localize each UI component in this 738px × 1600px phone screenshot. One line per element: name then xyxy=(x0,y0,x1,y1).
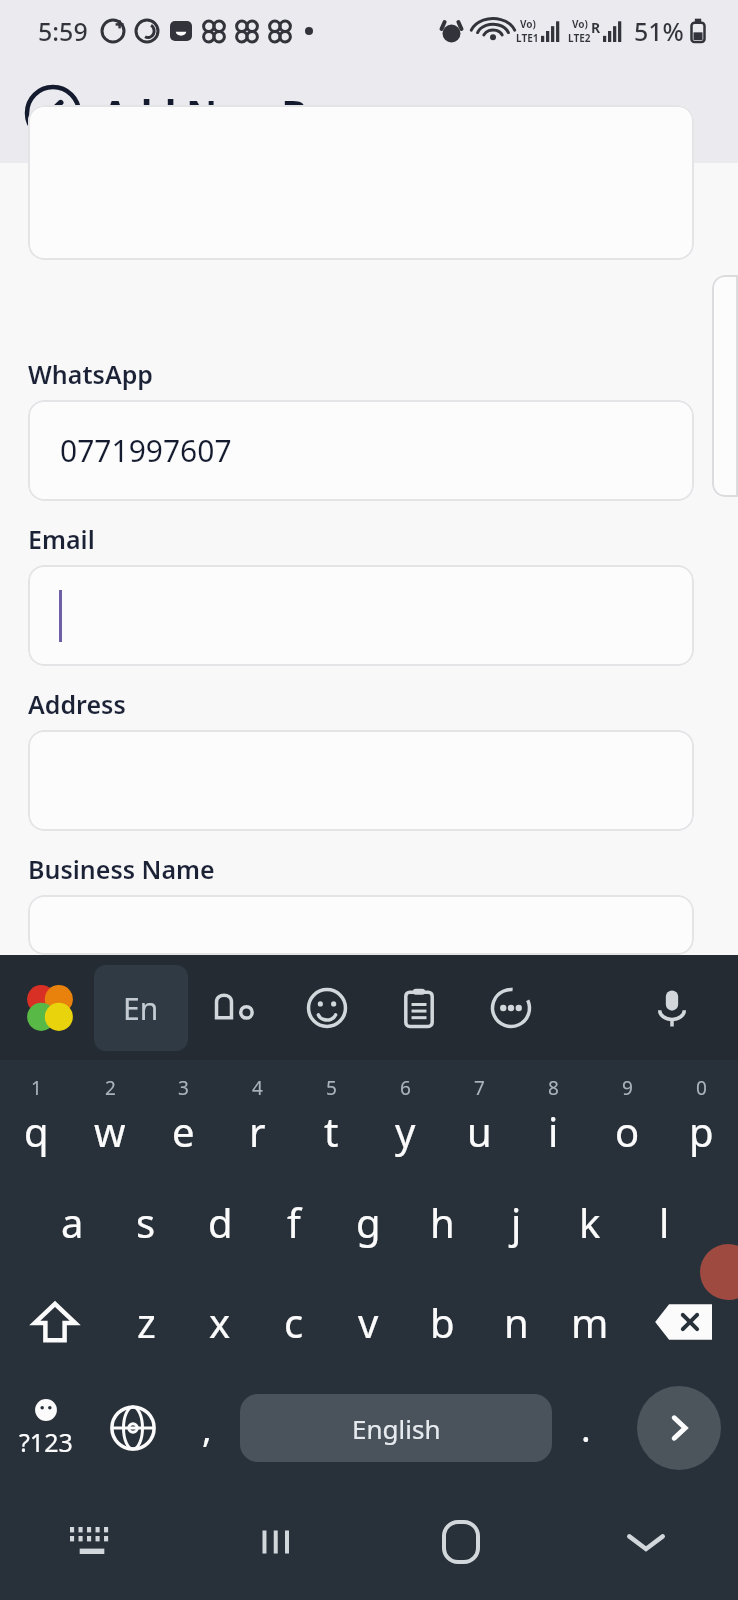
staticText: Business Name xyxy=(28,852,215,886)
staticText: m xyxy=(571,1295,609,1349)
staticText: Vo) xyxy=(520,17,536,31)
staticText: r xyxy=(249,1104,266,1158)
button[interactable]: 4 xyxy=(220,1060,294,1172)
button[interactable]: Stickers xyxy=(188,965,281,1051)
button[interactable]: Home xyxy=(368,1484,553,1600)
button[interactable]: a xyxy=(36,1172,109,1272)
staticText: WhatsApp xyxy=(28,357,153,391)
button[interactable] xyxy=(28,105,694,260)
staticText: c xyxy=(284,1295,304,1349)
staticText: Email xyxy=(28,522,95,556)
button[interactable]: Back xyxy=(22,82,84,144)
button[interactable]: Change language xyxy=(92,1372,173,1484)
button[interactable]: c xyxy=(257,1272,331,1372)
button[interactable]: s xyxy=(109,1172,183,1272)
staticText: 6 xyxy=(400,1075,411,1101)
staticText: 0 xyxy=(696,1075,707,1101)
staticText: l xyxy=(659,1195,670,1249)
staticText: d xyxy=(208,1195,233,1249)
staticText: p xyxy=(689,1104,714,1158)
staticText: q xyxy=(24,1104,49,1158)
button[interactable]: b xyxy=(405,1272,479,1372)
button[interactable]: 6 xyxy=(368,1060,442,1172)
staticText: s xyxy=(136,1195,156,1249)
staticText: 3 xyxy=(178,1075,189,1101)
staticText: LTE1 xyxy=(516,31,539,45)
button[interactable]: Voice input xyxy=(640,965,704,1051)
button[interactable]: Backspace xyxy=(627,1272,738,1372)
button[interactable]: . xyxy=(552,1372,619,1484)
staticText: u xyxy=(467,1104,492,1158)
button[interactable]: English xyxy=(240,1394,552,1462)
staticText: y xyxy=(395,1104,416,1158)
button[interactable]: 5 xyxy=(294,1060,368,1172)
button[interactable]: 2 xyxy=(73,1060,146,1172)
button[interactable]: Emoji xyxy=(281,965,373,1051)
button[interactable]: Show keyboard layout xyxy=(0,1484,184,1600)
staticText: o xyxy=(615,1104,640,1158)
button[interactable]: h xyxy=(405,1172,479,1272)
staticText: 5:59 xyxy=(38,14,88,48)
staticText: w xyxy=(94,1104,126,1158)
button[interactable]: 0 xyxy=(664,1060,738,1172)
button[interactable]: k xyxy=(553,1172,627,1272)
button[interactable]: g xyxy=(331,1172,405,1272)
button[interactable]: , xyxy=(173,1372,240,1484)
staticText: 51% xyxy=(634,14,684,48)
button[interactable]: x xyxy=(183,1272,257,1372)
staticText: R xyxy=(591,18,601,37)
button[interactable] xyxy=(28,895,694,955)
button[interactable]: v xyxy=(331,1272,405,1372)
button[interactable]: More options xyxy=(465,965,557,1051)
staticText: h xyxy=(430,1195,455,1249)
staticText: , xyxy=(202,1404,212,1453)
staticText: k xyxy=(579,1195,601,1249)
staticText: f xyxy=(287,1195,301,1249)
staticText: e xyxy=(172,1104,195,1158)
button[interactable] xyxy=(28,565,694,666)
button[interactable]: j xyxy=(479,1172,553,1272)
staticText: 5 xyxy=(326,1075,337,1101)
button[interactable]: z xyxy=(110,1272,183,1372)
button[interactable]: f xyxy=(257,1172,331,1272)
staticText: j xyxy=(511,1195,522,1249)
button[interactable]: 7 xyxy=(442,1060,516,1172)
staticText: 0771997607 xyxy=(60,430,232,471)
button[interactable]: Enter xyxy=(619,1372,738,1484)
button[interactable]: d xyxy=(183,1172,257,1272)
staticText: 2 xyxy=(105,1075,116,1101)
staticText: g xyxy=(356,1195,381,1249)
staticText: x xyxy=(209,1295,231,1349)
button[interactable]: Shift xyxy=(0,1272,110,1372)
button[interactable]: Hide keyboard xyxy=(553,1484,738,1600)
button[interactable]: Keyboard settings xyxy=(18,976,82,1040)
button[interactable]: 9 xyxy=(590,1060,664,1172)
button[interactable]: m xyxy=(553,1272,627,1372)
button[interactable]: n xyxy=(479,1272,553,1372)
staticText: 7 xyxy=(474,1075,485,1101)
button[interactable]: Recent apps xyxy=(184,1484,368,1600)
button[interactable]: 1 xyxy=(0,1060,73,1172)
button[interactable]: En xyxy=(94,965,188,1051)
staticText: 8 xyxy=(548,1075,559,1101)
staticText: LTE2 xyxy=(568,31,591,45)
staticText: 9 xyxy=(622,1075,633,1101)
button[interactable]: 8 xyxy=(516,1060,590,1172)
staticText: ?123 xyxy=(19,1425,73,1459)
staticText: i xyxy=(548,1104,559,1158)
staticText: Add New Borrower xyxy=(102,87,459,139)
button[interactable]: l xyxy=(627,1172,701,1272)
staticText: b xyxy=(430,1295,455,1349)
staticText: v xyxy=(358,1295,379,1349)
staticText: t xyxy=(324,1104,339,1158)
staticText: z xyxy=(137,1295,156,1349)
button[interactable]: 3 xyxy=(146,1060,220,1172)
staticText: Address xyxy=(28,687,126,721)
button[interactable] xyxy=(28,730,694,831)
staticText: 4 xyxy=(252,1075,263,1101)
button[interactable]: Clipboard xyxy=(373,965,465,1051)
button[interactable]: 0771997607 xyxy=(28,400,694,501)
button[interactable]: Symbols xyxy=(0,1372,92,1484)
staticText: Vo) xyxy=(572,17,588,31)
staticText: English xyxy=(352,1411,441,1446)
